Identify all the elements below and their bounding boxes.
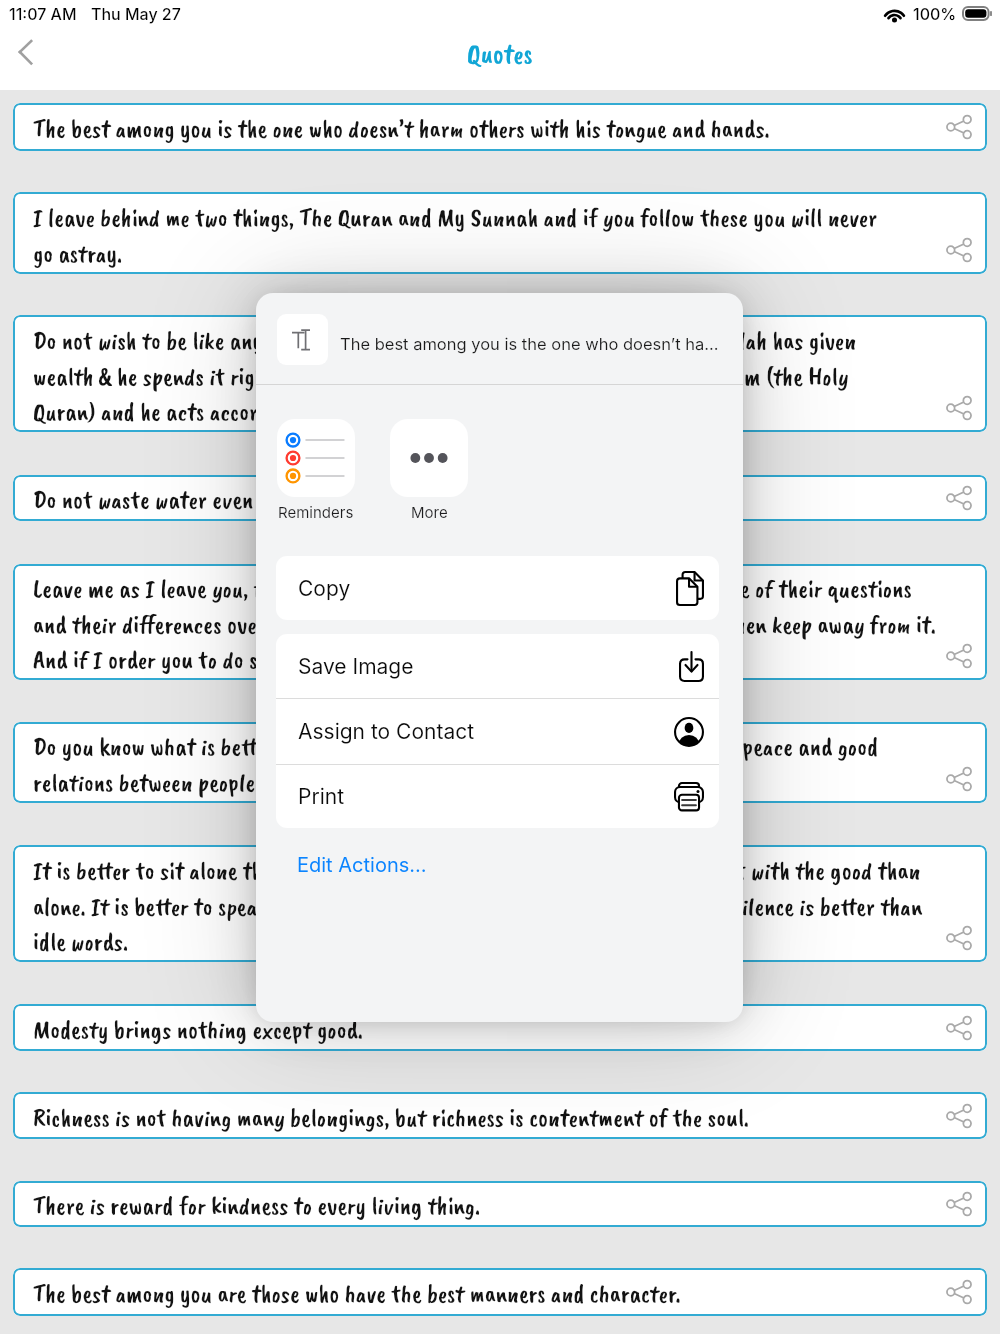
button[interactable]: Do not wish to be like anyone except in …	[13, 315, 987, 432]
staticText: Modesty brings nothing except good.	[33, 1014, 938, 1046]
staticText: 100%	[913, 4, 957, 23]
staticText: The best among you are those who have th…	[33, 1278, 938, 1310]
button[interactable]: Reminders	[277, 419, 355, 521]
staticText: Do not wish to be like anyone except in …	[33, 325, 938, 427]
button[interactable]: Share	[931, 226, 987, 274]
button[interactable]: Richness is not having many belongings, …	[13, 1092, 987, 1139]
staticText: Print	[298, 784, 345, 809]
button[interactable]: Print	[276, 765, 719, 828]
button[interactable]: Assign to Contact	[276, 699, 719, 764]
staticText: There is reward for kindness to every li…	[33, 1190, 938, 1222]
staticText: Do you know what is better than charity …	[33, 731, 938, 798]
staticText: Quotes	[467, 36, 533, 71]
staticText: Save Image	[298, 654, 414, 679]
button[interactable]: Share	[931, 384, 987, 432]
button[interactable]: Share	[931, 755, 987, 803]
button[interactable]: Leave me as I leave you, for the people …	[13, 564, 987, 680]
staticText: Edit Actions…	[297, 853, 427, 877]
button[interactable]: The best among you are those who have th…	[13, 1268, 987, 1316]
button[interactable]: It is better to sit alone than in compan…	[13, 845, 987, 962]
button[interactable]: Share	[931, 914, 987, 962]
button[interactable]: Save Image	[276, 634, 719, 698]
staticText: The best among you is the one who doesn’…	[340, 334, 719, 354]
staticText: Copy	[298, 576, 351, 601]
button[interactable]: Share	[931, 1181, 987, 1227]
button[interactable]: Back	[6, 30, 48, 74]
button[interactable]: The best among you is the one who doesn’…	[13, 103, 987, 151]
staticText: The best among you is the one who doesn’…	[33, 113, 938, 145]
button[interactable]: Modesty brings nothing except good.	[13, 1004, 987, 1051]
staticText: Assign to Contact	[298, 719, 475, 744]
button[interactable]: More	[390, 419, 468, 521]
button[interactable]: Share	[931, 1004, 987, 1051]
button[interactable]: Share	[931, 632, 987, 680]
button[interactable]: Share	[931, 475, 987, 521]
button[interactable]: I leave behind me two things, The Quran …	[13, 192, 987, 274]
staticText: Richness is not having many belongings, …	[33, 1102, 938, 1134]
staticText: Leave me as I leave you, for the people …	[33, 573, 938, 675]
button[interactable]: Share	[931, 1092, 987, 1139]
button[interactable]: Copy	[276, 556, 719, 620]
staticText: Do not waste water even if you were at a…	[33, 484, 938, 516]
staticText: It is better to sit alone than in compan…	[33, 855, 938, 957]
staticText: More	[411, 503, 448, 521]
button[interactable]: Edit Actions…	[297, 853, 427, 877]
staticText: 11:07 AM	[9, 4, 77, 23]
button[interactable]: Share	[931, 1268, 987, 1316]
button[interactable]: Share	[931, 103, 987, 151]
button[interactable]: There is reward for kindness to every li…	[13, 1181, 987, 1227]
staticText: I leave behind me two things, The Quran …	[33, 202, 938, 269]
button[interactable]: Do not waste water even if you were at a…	[13, 475, 987, 521]
staticText: Thu May 27	[91, 4, 181, 23]
staticText: Reminders	[278, 503, 354, 521]
button[interactable]: Do you know what is better than charity …	[13, 722, 987, 803]
